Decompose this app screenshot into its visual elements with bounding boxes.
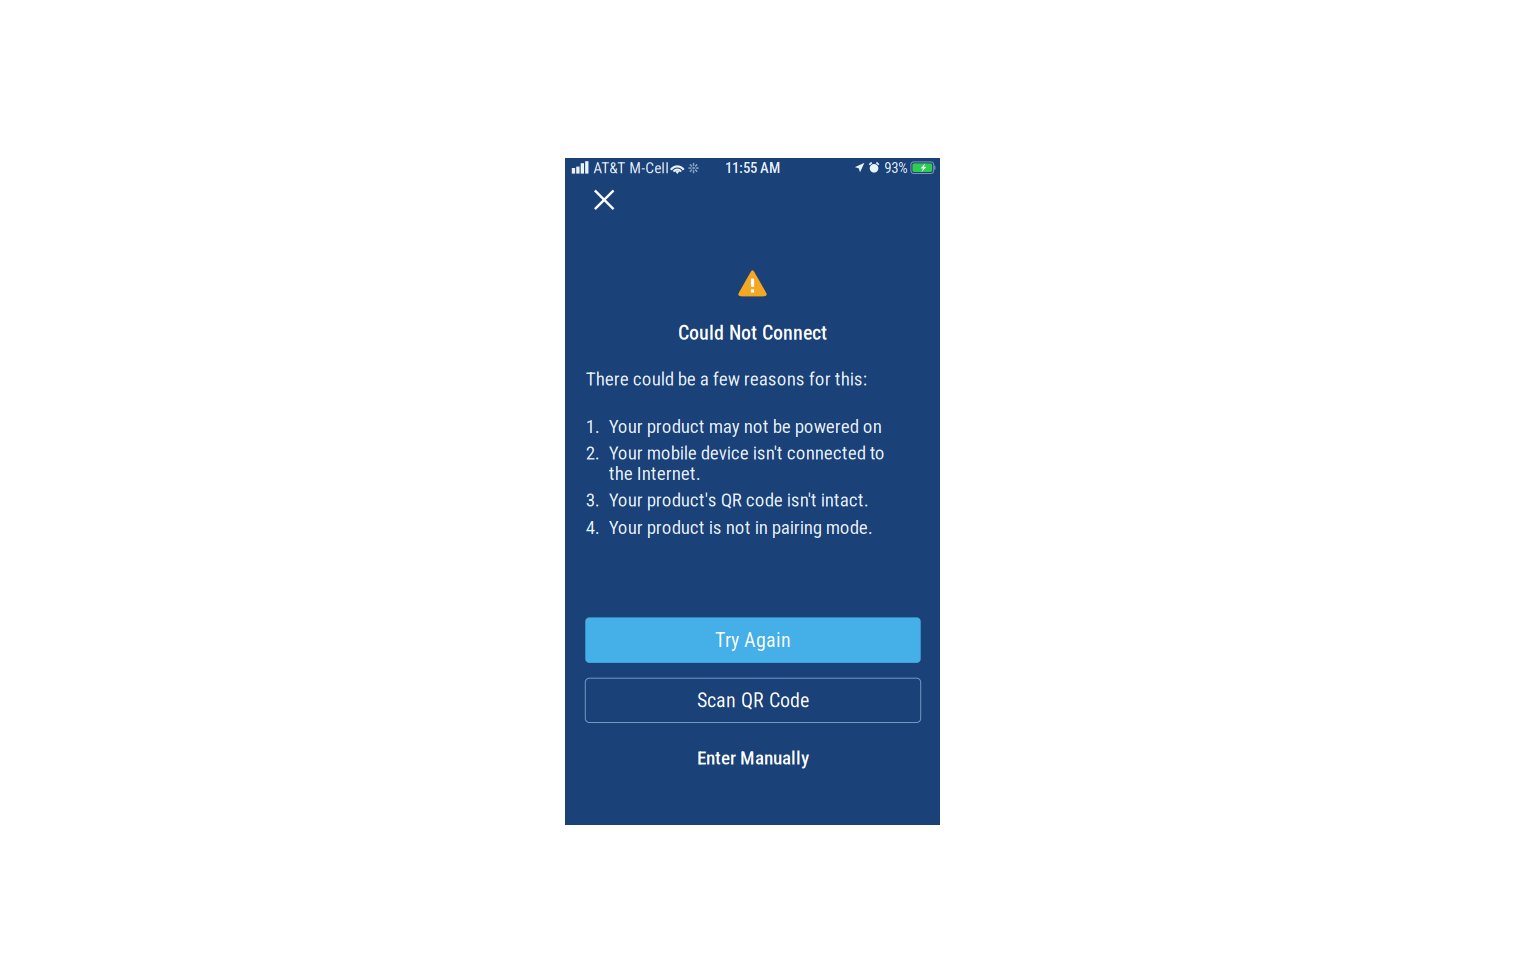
staticText: Try Again: [715, 628, 791, 652]
button[interactable]: Try Again: [585, 617, 921, 663]
staticText: There could be a few reasons for this:: [586, 368, 867, 390]
staticText: Your mobile device isn't connected to: [609, 442, 885, 464]
staticText: 11:55 AM: [725, 159, 780, 177]
staticText: 3.: [586, 489, 600, 511]
staticText: AT&T M-Cell: [593, 159, 669, 177]
staticText: the Internet.: [609, 462, 701, 484]
staticText: Scan QR Code: [697, 689, 809, 712]
staticText: 2.: [586, 442, 600, 464]
staticText: 1.: [586, 415, 600, 437]
staticText: Your product may not be powered on: [609, 415, 882, 437]
staticText: Could Not Connect: [678, 321, 827, 345]
staticText: 4.: [586, 516, 600, 538]
staticText: 93%: [884, 159, 907, 177]
staticText: Enter Manually: [697, 747, 809, 769]
button[interactable]: Enter Manually: [586, 740, 920, 776]
button[interactable]: Scan QR Code: [585, 678, 921, 722]
staticText: Your product is not in pairing mode.: [609, 516, 873, 538]
button[interactable]: Close: [583, 180, 625, 220]
staticText: Your product's QR code isn't intact.: [609, 489, 869, 511]
